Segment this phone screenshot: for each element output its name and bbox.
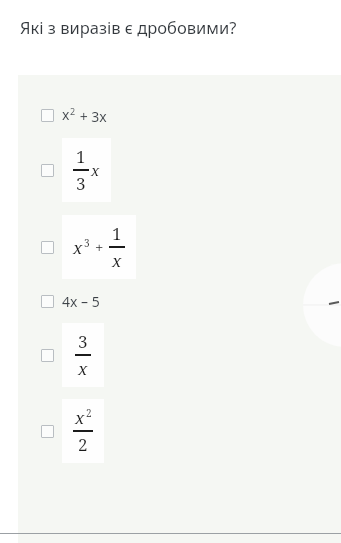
staticText: 3: [76, 172, 86, 195]
staticText: 3: [78, 330, 88, 353]
staticText: 3: [84, 236, 90, 250]
button[interactable]: Checkbox: [18, 399, 341, 463]
staticText: 1: [76, 145, 86, 168]
button[interactable]: Checkbox: [41, 164, 54, 177]
button[interactable]: Checkbox: [41, 109, 54, 122]
button[interactable]: Checkbox: [41, 425, 54, 438]
button[interactable]: Checkbox: [18, 138, 341, 202]
button[interactable]: Checkbox: [41, 241, 54, 254]
staticText: x: [112, 249, 122, 272]
staticText: x: [62, 105, 70, 124]
button[interactable]: Checkbox: [18, 215, 341, 279]
staticText: 2: [78, 433, 88, 456]
staticText: 4x – 5: [62, 292, 100, 311]
staticText: x: [75, 406, 85, 429]
button[interactable]: Checkbox: [18, 323, 341, 387]
staticText: +: [95, 237, 104, 257]
button[interactable]: Checkbox: [18, 292, 341, 311]
staticText: x: [91, 160, 100, 180]
button[interactable]: Checkbox: [18, 105, 341, 126]
staticText: 2: [70, 105, 76, 117]
staticText: x: [73, 236, 83, 259]
button[interactable]: Checkbox: [41, 295, 54, 308]
staticText: 1: [112, 222, 122, 245]
staticText: Які з виразів є дробовими?: [20, 16, 237, 38]
staticText: + 3x: [76, 107, 107, 126]
button[interactable]: Checkbox: [41, 349, 54, 362]
staticText: 2: [86, 406, 92, 420]
staticText: x: [78, 357, 88, 380]
